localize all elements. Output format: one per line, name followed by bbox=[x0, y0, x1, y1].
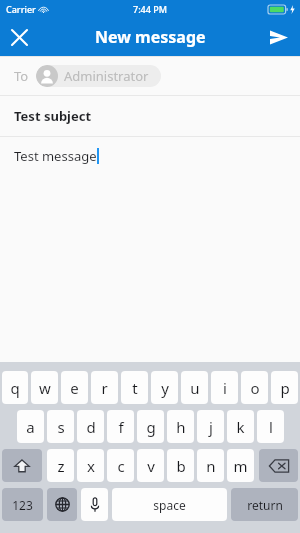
staticText: x bbox=[87, 456, 95, 476]
staticText: r bbox=[101, 378, 108, 398]
staticText: q bbox=[10, 378, 20, 398]
button[interactable]: h bbox=[167, 410, 194, 443]
staticText: j bbox=[209, 417, 213, 437]
staticText: e bbox=[70, 378, 79, 398]
staticText: f bbox=[118, 417, 124, 437]
staticText: m bbox=[233, 456, 248, 476]
button[interactable]: y bbox=[151, 371, 178, 404]
button[interactable]: u bbox=[181, 371, 208, 404]
staticText: v bbox=[147, 456, 155, 476]
button[interactable]: w bbox=[31, 371, 58, 404]
button[interactable]: b bbox=[167, 449, 194, 482]
button[interactable]: m bbox=[227, 449, 254, 482]
staticText: c bbox=[117, 456, 125, 476]
staticText: d bbox=[86, 417, 96, 437]
button[interactable]: t bbox=[121, 371, 148, 404]
staticText: h bbox=[176, 417, 186, 437]
staticText: u bbox=[190, 378, 200, 398]
button[interactable]: z bbox=[47, 449, 74, 482]
button[interactable]: To bbox=[0, 57, 300, 95]
staticText: a bbox=[26, 417, 35, 437]
button[interactable]: space bbox=[112, 488, 227, 521]
staticText: o bbox=[250, 378, 260, 398]
staticText: g bbox=[146, 417, 156, 437]
staticText: 7:44 PM bbox=[133, 3, 167, 15]
button[interactable]: a bbox=[17, 410, 44, 443]
staticText: s bbox=[57, 417, 65, 437]
staticText: return bbox=[247, 497, 283, 513]
button[interactable]: p bbox=[271, 371, 298, 404]
staticText: space bbox=[153, 497, 186, 513]
staticText: b bbox=[176, 456, 186, 476]
staticText: k bbox=[236, 417, 245, 437]
staticText: z bbox=[57, 456, 65, 476]
staticText: y bbox=[161, 378, 169, 398]
staticText: 123 bbox=[12, 497, 33, 513]
button[interactable]: Close bbox=[0, 18, 38, 56]
button[interactable]: d bbox=[77, 410, 104, 443]
button[interactable]: f bbox=[107, 410, 134, 443]
button[interactable]: s bbox=[47, 410, 74, 443]
staticText: Administrator bbox=[64, 67, 149, 85]
staticText: p bbox=[280, 378, 290, 398]
button[interactable]: Test message bbox=[0, 137, 300, 175]
staticText: t bbox=[132, 378, 138, 398]
button[interactable]: Dictate bbox=[81, 488, 108, 521]
button[interactable]: Shift bbox=[2, 449, 42, 482]
staticText: Test message bbox=[14, 147, 97, 165]
button[interactable]: Backspace bbox=[259, 449, 298, 482]
button[interactable]: v bbox=[137, 449, 164, 482]
button[interactable]: 123 bbox=[2, 488, 43, 521]
button[interactable]: i bbox=[211, 371, 238, 404]
button[interactable]: r bbox=[91, 371, 118, 404]
button[interactable]: Change keyboard bbox=[47, 488, 77, 521]
button[interactable]: n bbox=[197, 449, 224, 482]
button[interactable]: l bbox=[257, 410, 284, 443]
staticText: Test subject bbox=[14, 107, 92, 125]
button[interactable]: x bbox=[77, 449, 104, 482]
button[interactable]: c bbox=[107, 449, 134, 482]
button[interactable]: g bbox=[137, 410, 164, 443]
button[interactable]: Test subject bbox=[0, 96, 300, 136]
button[interactable]: Send bbox=[258, 18, 300, 56]
staticText: n bbox=[206, 456, 216, 476]
button[interactable]: j bbox=[197, 410, 224, 443]
staticText: Carrier bbox=[6, 3, 36, 15]
button[interactable]: o bbox=[241, 371, 268, 404]
staticText: i bbox=[223, 378, 227, 398]
staticText: l bbox=[269, 417, 273, 437]
button[interactable]: return bbox=[231, 488, 298, 521]
staticText: New message bbox=[95, 26, 206, 48]
button[interactable]: k bbox=[227, 410, 254, 443]
button[interactable]: e bbox=[61, 371, 88, 404]
button[interactable]: q bbox=[2, 371, 28, 404]
staticText: To bbox=[14, 67, 29, 85]
staticText: w bbox=[39, 378, 51, 398]
